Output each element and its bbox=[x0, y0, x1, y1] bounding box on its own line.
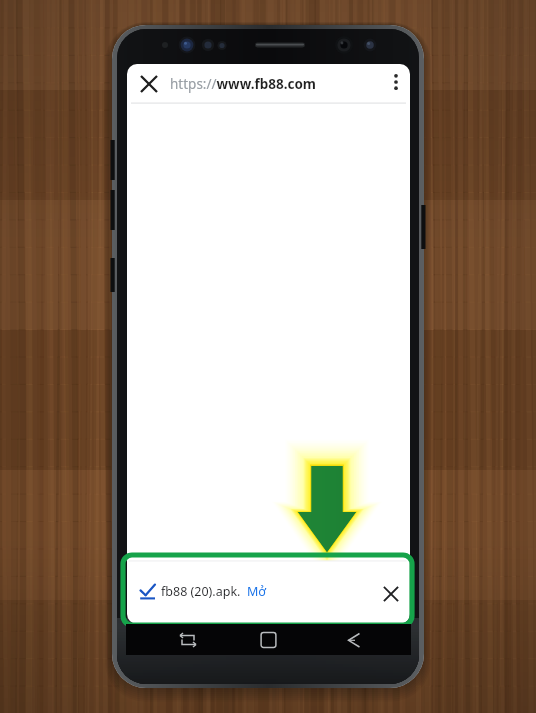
staticText: https://www.fb88.com bbox=[170, 75, 317, 93]
button[interactable]: More options bbox=[383, 69, 409, 95]
other: Downloaded file bbox=[138, 583, 158, 603]
button[interactable]: fb88 (20).apk. Mở bbox=[161, 578, 291, 604]
staticText: fb88 (20).apk. Mở bbox=[161, 583, 266, 600]
button[interactable]: Close tab bbox=[133, 68, 165, 100]
button[interactable]: Dismiss download bbox=[378, 581, 404, 607]
button[interactable]: https://www.fb88.com bbox=[170, 72, 360, 96]
